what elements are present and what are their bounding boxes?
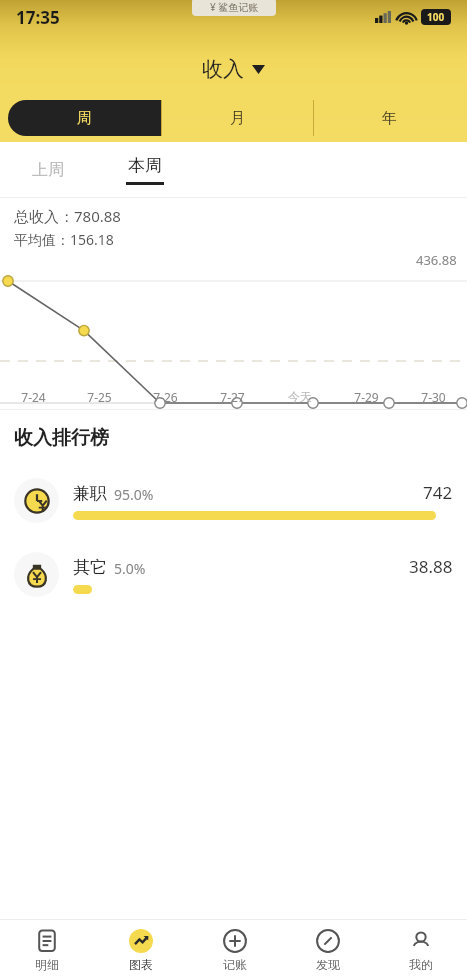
- staticText: 38.88: [409, 555, 453, 578]
- staticText: 17:35: [16, 6, 60, 29]
- staticText: 兼职: [73, 483, 107, 504]
- button[interactable]: 明细: [0, 920, 94, 980]
- button[interactable]: 收入: [202, 56, 265, 82]
- staticText: 7-26: [153, 389, 178, 405]
- staticText: 742: [423, 481, 453, 504]
- button[interactable]: 兼职: [14, 472, 453, 528]
- staticText: 其它: [73, 557, 107, 578]
- button[interactable]: 月: [162, 100, 313, 136]
- staticText: 图表: [129, 957, 153, 972]
- staticText: 周: [77, 109, 92, 128]
- button[interactable]: 记账: [188, 920, 281, 980]
- staticText: ¥ 鲨鱼记账: [210, 0, 259, 14]
- staticText: 记账: [223, 957, 247, 972]
- staticText: 今天: [288, 389, 312, 404]
- staticText: 436.88: [416, 251, 457, 269]
- staticText: 7-30: [421, 389, 446, 405]
- staticText: 月: [230, 109, 245, 128]
- staticText: 收入: [202, 56, 244, 82]
- button[interactable]: 发现: [281, 920, 374, 980]
- button[interactable]: 图表: [94, 920, 188, 980]
- staticText: 上周: [32, 160, 64, 180]
- staticText: 7-29: [354, 389, 379, 405]
- staticText: 100: [427, 10, 445, 24]
- staticText: 95.0%: [114, 485, 154, 504]
- staticText: 平均值：156.18: [14, 230, 114, 249]
- staticText: 明细: [35, 957, 59, 972]
- staticText: 我的: [409, 957, 433, 972]
- staticText: 发现: [316, 957, 340, 972]
- button[interactable]: 周: [8, 100, 161, 136]
- staticText: 收入排行榜: [14, 426, 109, 450]
- staticText: 7-27: [220, 389, 245, 405]
- button[interactable]: 年: [314, 100, 465, 136]
- staticText: 7-24: [21, 389, 46, 405]
- button[interactable]: 其它: [14, 546, 453, 602]
- button[interactable]: 我的: [374, 920, 467, 980]
- staticText: 总收入：780.88: [14, 206, 121, 226]
- button[interactable]: 上周: [18, 142, 78, 198]
- staticText: 7-25: [87, 389, 112, 405]
- staticText: 本周: [128, 155, 162, 176]
- staticText: 年: [382, 109, 397, 128]
- button[interactable]: 本周: [114, 142, 176, 198]
- staticText: 5.0%: [114, 559, 146, 578]
